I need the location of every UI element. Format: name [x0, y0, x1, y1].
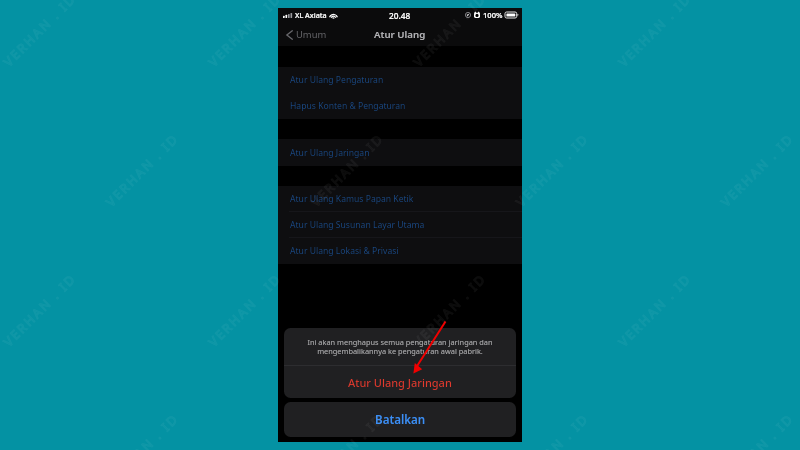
staticText: Atur Ulang Jaringan [290, 147, 370, 159]
button[interactable]: Hapus Konten & Pengaturan [278, 93, 522, 119]
staticText: Atur Ulang Pengaturan [290, 74, 384, 86]
button[interactable]: Atur Ulang Jaringan [278, 139, 522, 166]
staticText: Batalkan [375, 412, 426, 428]
staticText: 20.48 [389, 10, 411, 21]
button[interactable]: Atur Ulang Lokasi & Privasi [278, 238, 522, 264]
staticText: 100% [483, 10, 503, 20]
staticText: Atur Ulang [374, 28, 426, 41]
button[interactable]: Atur Ulang Jaringan [284, 366, 516, 398]
staticText: Hapus Konten & Pengaturan [290, 100, 406, 112]
button[interactable]: Batalkan [284, 402, 516, 437]
other: Back [286, 30, 293, 40]
button[interactable]: Atur Ulang Pengaturan [278, 67, 522, 93]
button[interactable]: Atur Ulang Susunan Layar Utama [278, 212, 522, 238]
staticText: XL Axiata [295, 10, 327, 20]
staticText: Atur Ulang Kamus Papan Ketik [290, 193, 414, 205]
staticText: Atur Ulang Susunan Layar Utama [290, 219, 425, 231]
other: Wi-Fi [329, 12, 338, 19]
staticText: Ini akan menghapus semua pengaturan jari… [299, 337, 501, 356]
button[interactable]: Back [286, 28, 327, 41]
button[interactable]: Atur Ulang Kamus Papan Ketik [278, 186, 522, 212]
staticText: Atur Ulang Jaringan [348, 375, 452, 390]
staticText: Umum [296, 28, 327, 41]
staticText: Atur Ulang Lokasi & Privasi [290, 245, 399, 257]
